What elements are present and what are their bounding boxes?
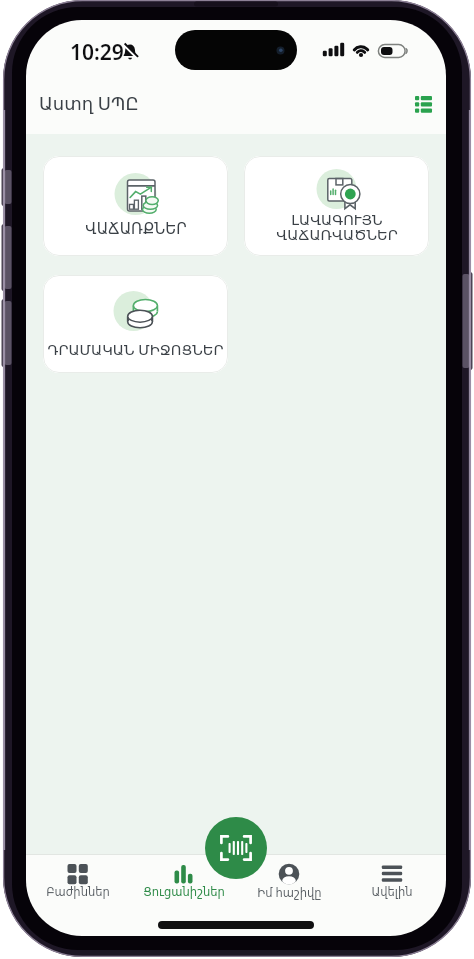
button[interactable]: ՎԱՃԱՌՔՆԵՐ <box>43 156 228 256</box>
staticText: 10:29 <box>70 38 124 67</box>
button[interactable]: Բաժիններ <box>32 856 124 934</box>
button[interactable]: Իմ հաշիվը <box>243 856 335 934</box>
staticText: Ավելին <box>371 885 413 898</box>
button[interactable] <box>411 92 437 118</box>
staticText: ԴՐԱՄԱԿԱՆ ՄԻՋՈՑՆԵՐ <box>47 339 224 359</box>
staticText: Աստղ ՍՊԸ <box>39 91 139 116</box>
button[interactable]: Ցուցանիշներ <box>138 856 230 934</box>
button[interactable]: ԼԱՎԱԳՈՒՅՆ ՎԱՃԱՌՎԱԾՆԵՐ <box>244 156 429 256</box>
button[interactable] <box>205 817 267 879</box>
button[interactable]: Ավելին <box>346 856 438 934</box>
staticText: Բաժիններ <box>46 885 110 898</box>
staticText: Իմ հաշիվը <box>257 885 322 901</box>
staticText: ԼԱՎԱԳՈՒՅՆ ՎԱՃԱՌՎԱԾՆԵՐ <box>276 212 398 243</box>
button[interactable]: ԴՐԱՄԱԿԱՆ ՄԻՋՈՑՆԵՐ <box>43 275 228 373</box>
staticText: Ցուցանիշներ <box>143 885 225 898</box>
staticText: ՎԱՃԱՌՔՆԵՐ <box>85 220 187 237</box>
